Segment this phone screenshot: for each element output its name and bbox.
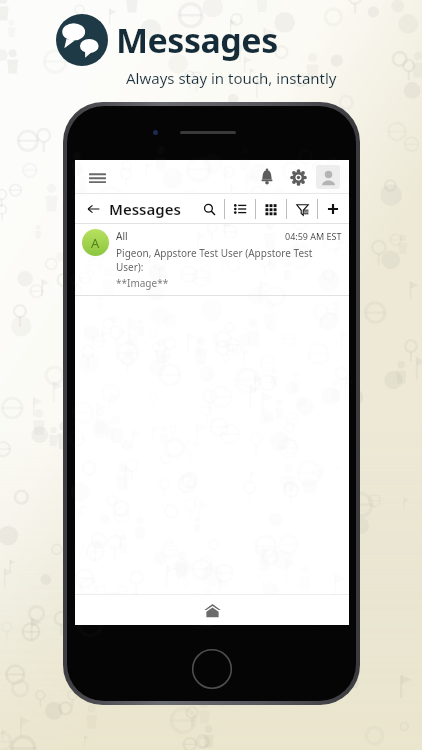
button[interactable]: New message — [323, 199, 343, 219]
staticText: Messages — [116, 17, 278, 63]
button[interactable]: Grid view — [261, 199, 281, 219]
staticText: All — [116, 229, 128, 243]
button[interactable]: List view — [230, 199, 250, 219]
staticText: **Image** — [116, 276, 169, 290]
staticText: Always stay in touch, instantly — [126, 68, 337, 88]
staticText: Pigeon, Appstore Test User (Appstore Tes… — [116, 246, 342, 274]
button[interactable]: Menu — [84, 164, 110, 190]
button[interactable]: Back — [83, 199, 103, 219]
button[interactable]: Notifications — [254, 164, 280, 190]
button[interactable]: Home — [75, 595, 349, 625]
button[interactable]: Search — [199, 199, 219, 219]
button[interactable]: Profile — [316, 165, 340, 189]
staticText: 04:59 AM EST — [285, 230, 342, 242]
button[interactable]: Settings — [285, 164, 311, 190]
staticText: A — [91, 234, 100, 252]
button[interactable]: A — [75, 224, 349, 295]
button[interactable]: Filter — [292, 199, 312, 219]
staticText: Messages — [109, 199, 181, 219]
